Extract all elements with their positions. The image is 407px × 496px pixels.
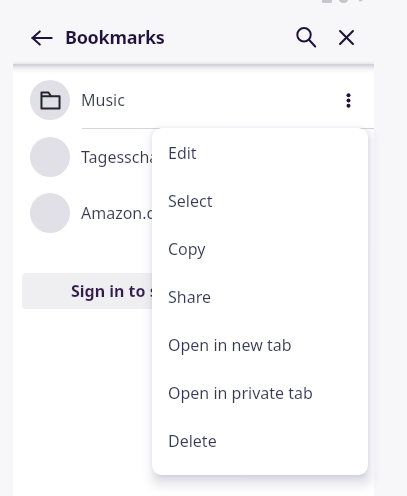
staticText: Sign in to sync [71,280,186,302]
staticText: Open in private tab [168,382,313,404]
staticText: Bookmarks [65,25,165,50]
button[interactable]: Share [152,273,368,321]
staticText: Edit [168,142,197,164]
button[interactable]: Search [284,15,328,59]
staticText: Copy [168,238,206,260]
button[interactable]: Delete [152,417,368,465]
staticText: Delete [168,430,217,452]
button[interactable]: Navigate up [20,16,64,60]
button[interactable]: Edit [152,129,368,177]
staticText: Select [168,190,213,212]
button[interactable]: More options [328,80,368,120]
staticText: Music [81,89,328,111]
button[interactable]: Sign in to sync [22,273,365,309]
staticText: Share [168,286,211,308]
button[interactable]: Open in private tab [152,369,368,417]
staticText: Tagesschau [81,146,328,168]
button[interactable]: Open in new tab [152,321,368,369]
button[interactable]: Copy [152,225,368,273]
button[interactable]: Tagesschau [13,129,374,185]
staticText: Open in new tab [168,334,292,356]
button[interactable]: Close [324,15,368,59]
staticText: Amazon.de [81,202,328,224]
button[interactable]: Amazon.de [13,185,374,241]
button[interactable]: Music [13,72,374,128]
button[interactable]: Select [152,177,368,225]
